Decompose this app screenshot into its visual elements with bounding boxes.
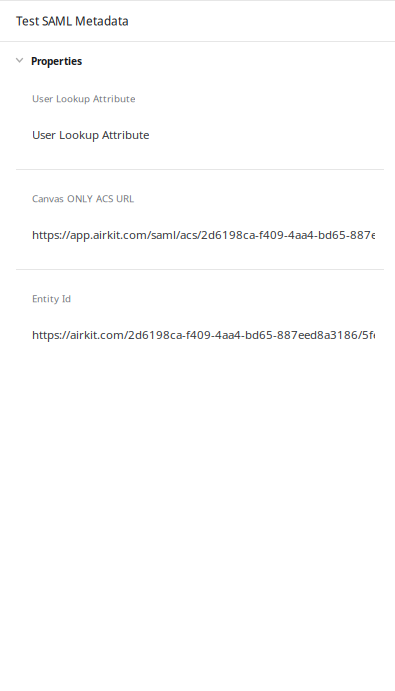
staticText: Entity Id [32, 292, 71, 305]
staticText: https://app.airkit.com/saml/acs/2d6198ca… [32, 227, 395, 242]
button[interactable]: Canvas ONLY ACS URL [0, 192, 395, 242]
staticText: Test SAML Metadata [16, 13, 129, 29]
staticText: User Lookup Attribute [32, 127, 149, 142]
button[interactable]: User Lookup Attribute [0, 92, 395, 142]
button[interactable]: Properties [0, 54, 395, 68]
staticText: Properties [31, 54, 82, 68]
staticText: Canvas ONLY ACS URL [32, 192, 134, 205]
button[interactable]: Entity Id [0, 292, 395, 342]
staticText: https://airkit.com/2d6198ca-f409-4aa4-bd… [32, 327, 395, 342]
staticText: User Lookup Attribute [32, 92, 135, 105]
